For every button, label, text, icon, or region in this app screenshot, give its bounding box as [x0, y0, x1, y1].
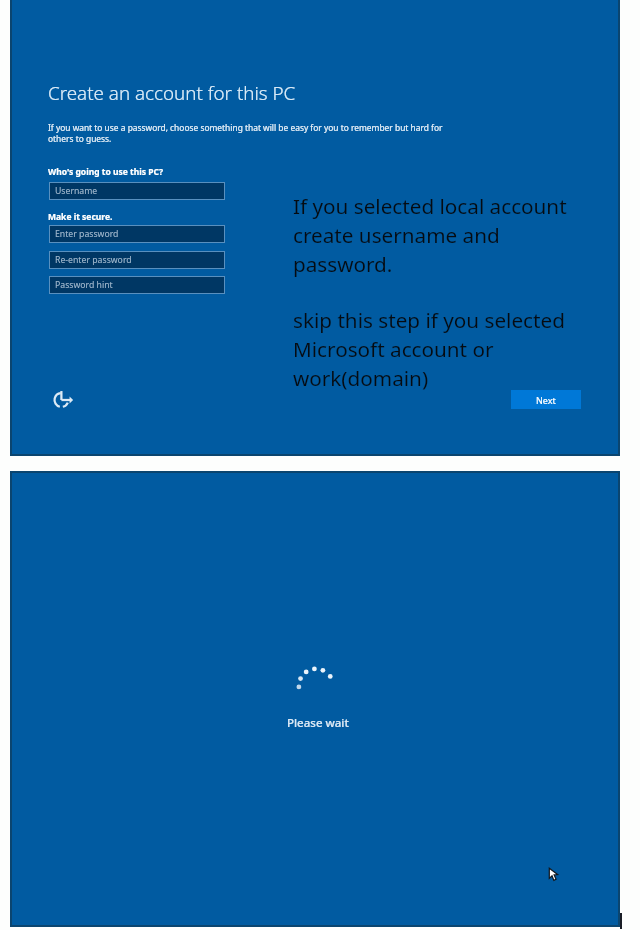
button[interactable]: Username [49, 182, 225, 200]
staticText: If you want to use a password, choose so… [48, 122, 443, 144]
staticText: If you selected local account create use… [293, 192, 567, 278]
staticText: Who's going to use this PC? [48, 166, 164, 178]
button[interactable]: Password hint [49, 276, 225, 294]
staticText: Create an account for this PC [48, 80, 296, 106]
staticText: Next [536, 394, 556, 406]
staticText: Enter password [55, 228, 119, 240]
staticText: Password hint [55, 279, 113, 291]
staticText: skip this step if you selected Microsoft… [293, 306, 565, 392]
button[interactable]: Re-enter password [49, 251, 225, 269]
button[interactable]: Enter password [49, 225, 225, 243]
button[interactable]: Next [511, 390, 581, 409]
staticText: Please wait [287, 715, 349, 731]
staticText: Re-enter password [55, 254, 132, 266]
staticText: Username [55, 185, 98, 197]
staticText: Make it secure. [48, 211, 113, 223]
button[interactable]: Ease of access [50, 385, 80, 415]
